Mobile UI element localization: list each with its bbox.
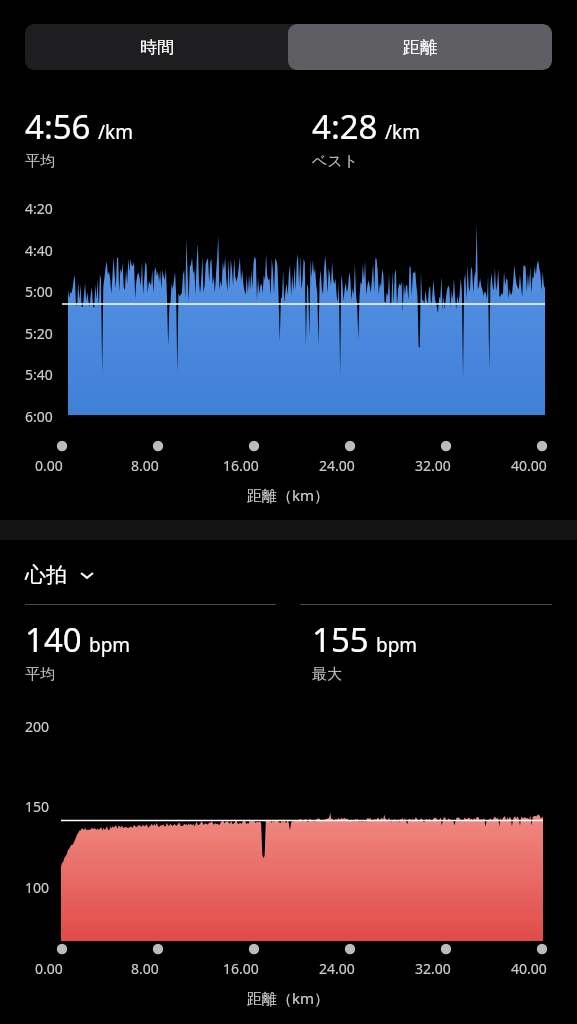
button[interactable]: 155: [312, 617, 577, 684]
other: Expand heart rate: [77, 565, 97, 585]
staticText: 40.00: [511, 959, 547, 978]
button[interactable]: 4:56: [25, 104, 288, 171]
staticText: /km: [385, 119, 420, 145]
staticText: bpm: [89, 632, 131, 658]
button[interactable]: 140: [25, 617, 288, 684]
staticText: 8.00: [131, 959, 159, 978]
staticText: 200: [25, 717, 50, 736]
button[interactable]: 時間: [25, 24, 288, 70]
staticText: 6:00: [25, 407, 53, 426]
button[interactable]: 心拍: [25, 562, 97, 588]
staticText: 40.00: [511, 456, 547, 475]
staticText: bpm: [376, 632, 418, 658]
staticText: 時間: [140, 37, 174, 58]
staticText: 4:28: [312, 104, 378, 149]
staticText: 4:56: [25, 104, 91, 149]
staticText: 平均: [25, 665, 55, 684]
staticText: 5:00: [25, 282, 53, 301]
button[interactable]: 4:28: [312, 104, 577, 171]
staticText: 距離（km）: [247, 988, 330, 1008]
staticText: 8.00: [131, 456, 159, 475]
staticText: 16.00: [223, 456, 259, 475]
staticText: 140: [25, 617, 82, 662]
staticText: ベスト: [312, 152, 359, 171]
staticText: 4:20: [25, 199, 53, 218]
staticText: /km: [98, 119, 133, 145]
staticText: 4:40: [25, 241, 53, 260]
staticText: 0.00: [35, 959, 63, 978]
staticText: 155: [312, 617, 369, 662]
staticText: 最大: [312, 665, 342, 684]
staticText: 距離: [403, 37, 437, 58]
staticText: 150: [25, 797, 50, 816]
staticText: 5:40: [25, 365, 53, 384]
staticText: 32.00: [415, 959, 451, 978]
staticText: 心拍: [25, 562, 67, 588]
staticText: 距離（km）: [247, 485, 330, 505]
staticText: 平均: [25, 152, 55, 171]
staticText: 16.00: [223, 959, 259, 978]
staticText: 100: [25, 878, 50, 897]
staticText: 32.00: [415, 456, 451, 475]
button[interactable]: 距離: [288, 24, 552, 70]
staticText: 0.00: [35, 456, 63, 475]
staticText: 24.00: [319, 456, 355, 475]
staticText: 24.00: [319, 959, 355, 978]
staticText: 5:20: [25, 324, 53, 343]
